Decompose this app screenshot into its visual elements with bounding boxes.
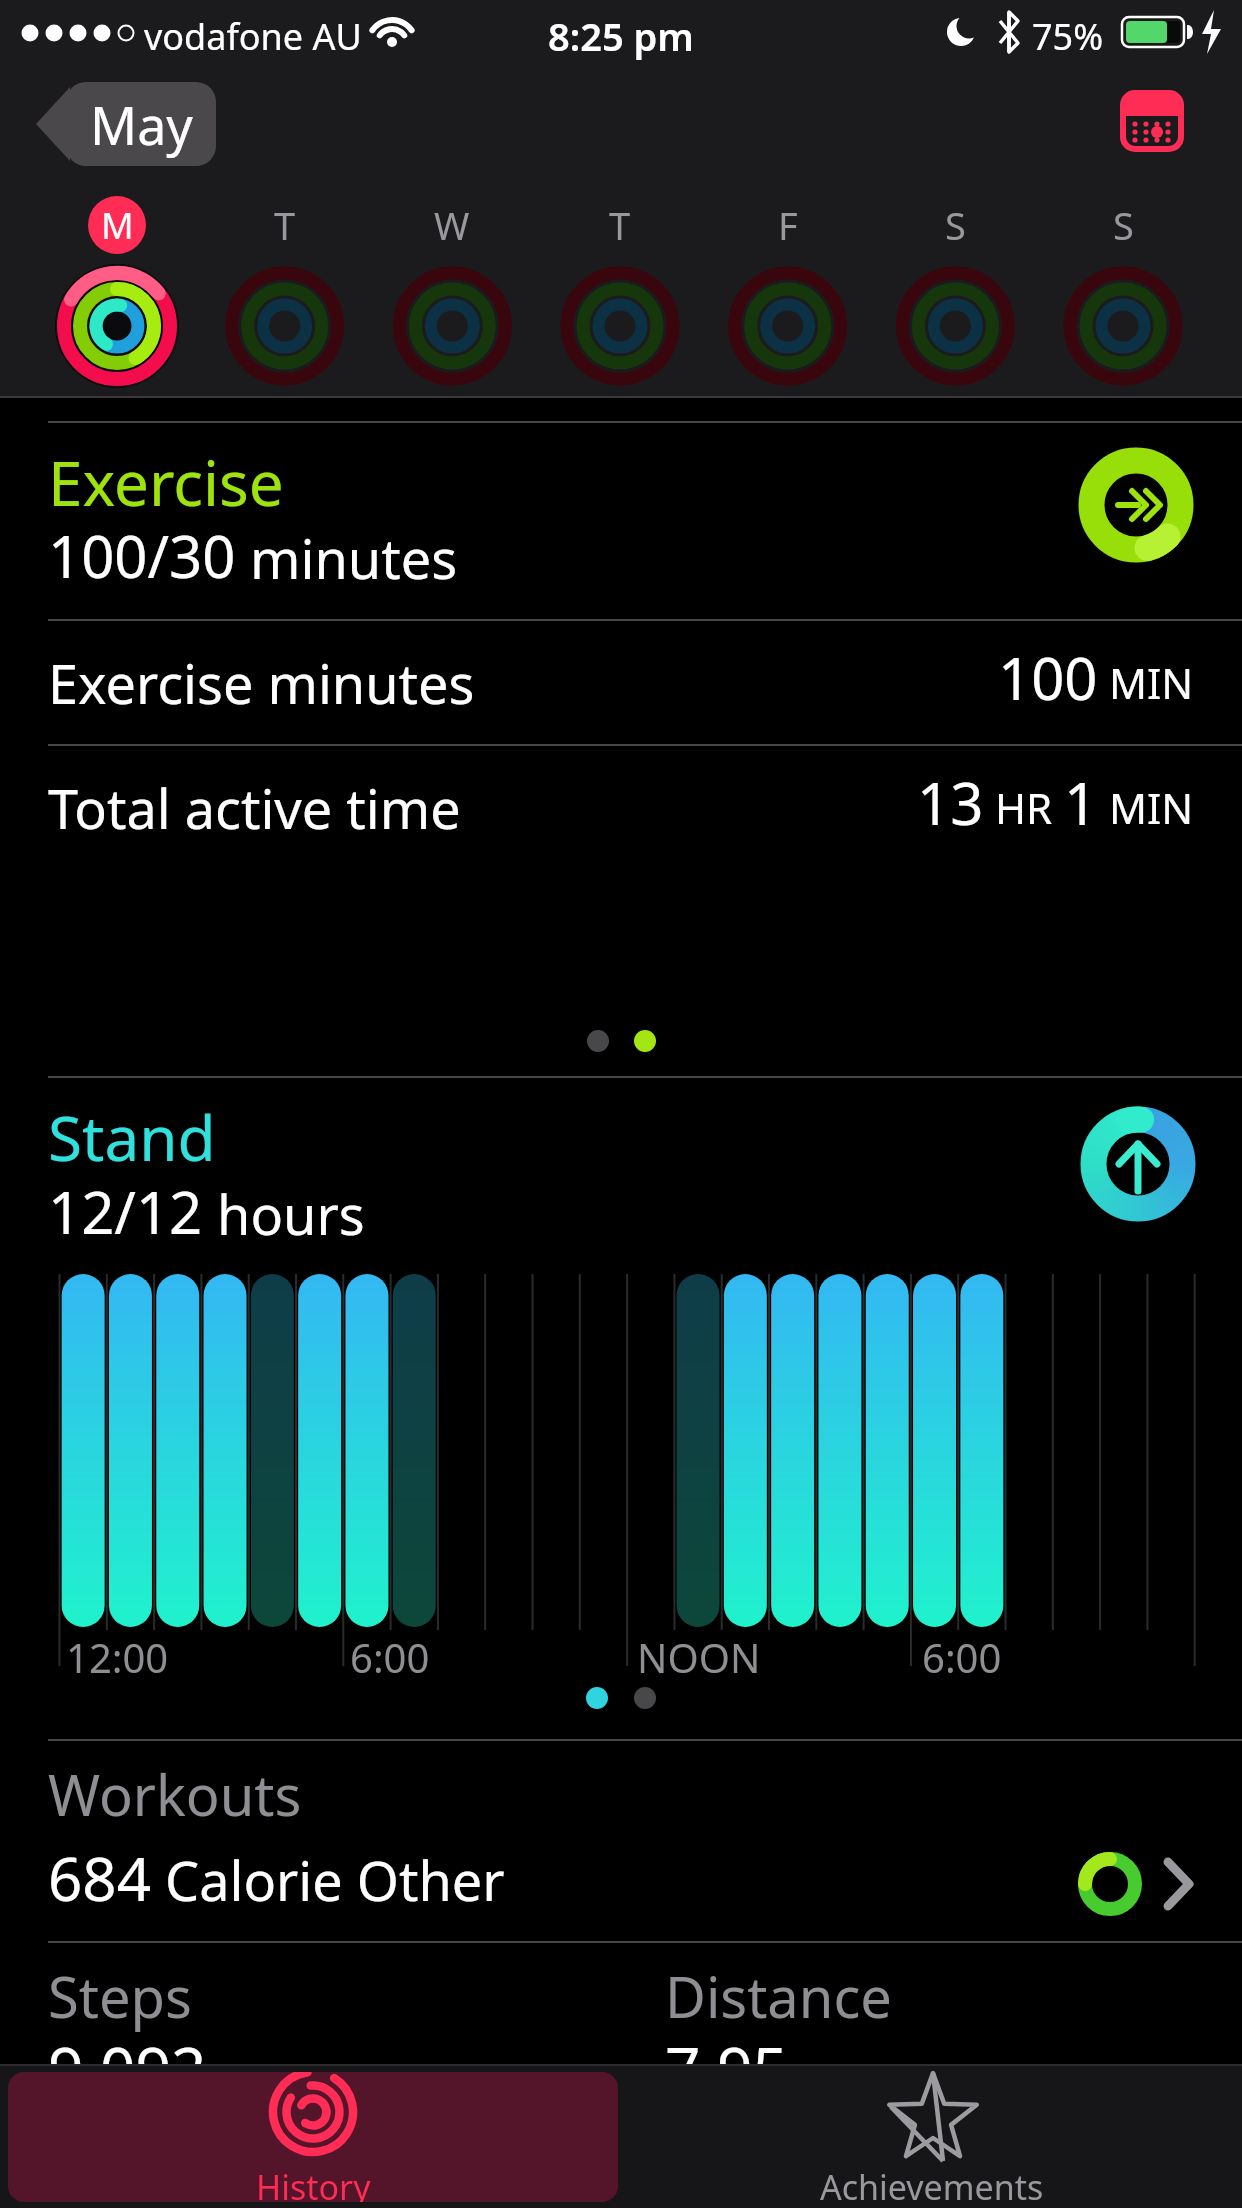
staticText: MIN <box>1098 779 1194 836</box>
button[interactable] <box>883 192 1027 392</box>
button[interactable] <box>1078 1104 1198 1224</box>
staticText: T <box>274 199 296 251</box>
staticText: Exercise <box>48 440 284 524</box>
staticText: minutes <box>236 521 458 595</box>
staticText: Workouts <box>48 1756 302 1832</box>
button[interactable] <box>716 192 860 392</box>
staticText: 8:25 pm <box>548 10 694 62</box>
staticText: 1 <box>1064 763 1098 842</box>
button[interactable]: 684 <box>0 1836 1242 1936</box>
staticText: Achievements <box>820 2164 1044 2208</box>
button[interactable] <box>213 192 357 392</box>
button[interactable] <box>45 192 189 392</box>
staticText: 7.95 <box>665 2026 789 2110</box>
button[interactable]: Stand <box>48 1095 216 1179</box>
button[interactable] <box>1076 445 1196 565</box>
staticText: MIN <box>1098 654 1194 711</box>
staticText: 6:00 <box>350 1630 430 1684</box>
staticText: 100/30 <box>48 516 236 595</box>
staticText: NOON <box>637 1630 761 1684</box>
staticText: M <box>101 201 134 250</box>
staticText: Distance <box>665 1958 892 2034</box>
staticText: HR <box>984 779 1064 836</box>
button[interactable]: Exercise <box>48 440 284 524</box>
staticText: 9,092 <box>48 2026 207 2110</box>
staticText: May <box>90 89 193 160</box>
staticText: 684 <box>48 1837 151 1919</box>
staticText: T <box>609 199 631 251</box>
staticText: Calorie Other <box>151 1843 505 1917</box>
button[interactable]: History <box>8 2072 618 2202</box>
staticText: History <box>256 2164 371 2202</box>
button[interactable]: Achievements <box>621 2064 1242 2208</box>
staticText: S <box>1113 199 1134 251</box>
staticText: S <box>945 199 966 251</box>
staticText: Total active time <box>48 771 461 845</box>
button[interactable]: May <box>36 82 216 166</box>
staticText: Steps <box>48 1958 192 2034</box>
staticText: Stand <box>48 1095 216 1179</box>
button[interactable] <box>1120 90 1184 152</box>
staticText: W <box>434 199 470 251</box>
staticText: vodafone AU <box>144 12 362 61</box>
button[interactable]: Total active time <box>0 755 1242 860</box>
staticText: 75% <box>1032 12 1104 61</box>
staticText: 100 <box>998 638 1098 717</box>
staticText: F <box>778 199 798 251</box>
button[interactable]: Exercise minutes <box>0 630 1242 735</box>
staticText: 6:00 <box>922 1630 1002 1684</box>
staticText: 12:00 <box>66 1630 169 1684</box>
staticText: 13 <box>917 763 984 842</box>
staticText: hours <box>203 1177 365 1251</box>
button[interactable] <box>380 192 524 392</box>
button[interactable] <box>1051 192 1195 392</box>
staticText: Exercise minutes <box>48 646 475 720</box>
staticText: 12/12 <box>48 1172 203 1251</box>
button[interactable] <box>548 192 692 392</box>
